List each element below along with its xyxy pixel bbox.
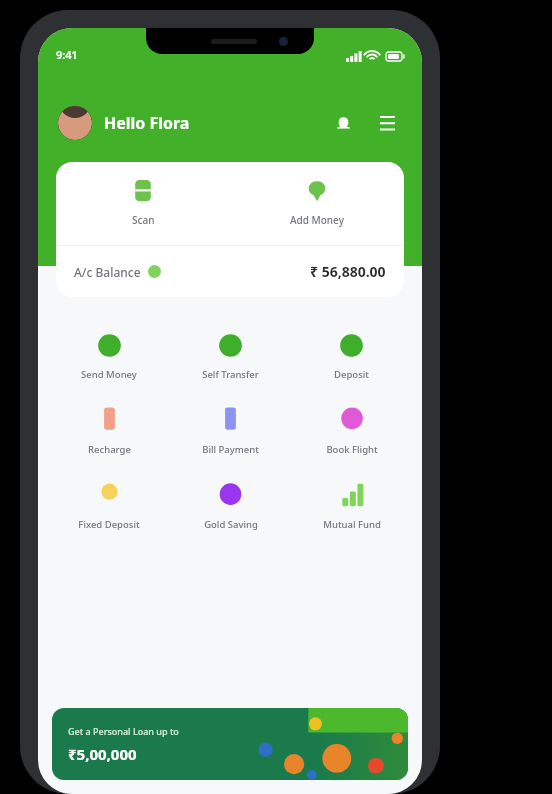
button[interactable]: Gold Saving xyxy=(170,469,291,544)
staticText: Book Flight xyxy=(326,443,378,456)
button[interactable]: Notifications xyxy=(328,108,358,138)
staticText: Gold Saving xyxy=(204,518,258,531)
button[interactable]: Bill Payment xyxy=(170,394,291,469)
staticText: Self Transfer xyxy=(202,368,259,381)
button[interactable]: Menu xyxy=(372,108,402,138)
button[interactable]: Get a Personal Loan up to xyxy=(52,708,408,780)
staticText: Fixed Deposit xyxy=(78,518,140,531)
button[interactable]: Add Money xyxy=(230,176,404,231)
staticText: Mutual Fund xyxy=(323,518,381,531)
button[interactable]: Recharge xyxy=(48,394,170,469)
staticText: Get a Personal Loan up to xyxy=(68,725,179,737)
button[interactable]: A/c Balance xyxy=(56,246,404,297)
button[interactable]: Deposit xyxy=(291,319,412,394)
staticText: ₹ 56,880.00 xyxy=(310,262,386,281)
staticText: Recharge xyxy=(88,443,131,456)
button[interactable]: Mutual Fund xyxy=(291,469,412,544)
staticText: Deposit xyxy=(334,368,369,381)
staticText: Send Money xyxy=(81,368,137,381)
button[interactable]: Send Money xyxy=(48,319,170,394)
button[interactable]: Scan xyxy=(56,176,230,231)
staticText: Add Money xyxy=(290,213,344,227)
staticText: Scan xyxy=(132,213,155,227)
button[interactable]: Book Flight xyxy=(291,394,412,469)
staticText: Hello Flora xyxy=(104,112,190,134)
staticText: A/c Balance xyxy=(74,264,141,280)
staticText: ₹5,00,000 xyxy=(68,744,137,764)
button[interactable]: Self Transfer xyxy=(170,319,291,394)
staticText: Bill Payment xyxy=(202,443,259,456)
button[interactable]: Fixed Deposit xyxy=(48,469,170,544)
staticText: 9:41 xyxy=(56,47,78,62)
